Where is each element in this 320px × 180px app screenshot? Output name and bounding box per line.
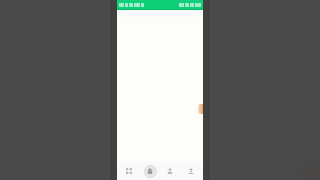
button[interactable]: Profile bbox=[161, 162, 179, 180]
button[interactable]: Upload bbox=[182, 162, 200, 180]
button[interactable]: Scroll handle bbox=[198, 104, 203, 114]
button[interactable]: Dashboard bbox=[120, 162, 138, 180]
button[interactable]: Home bbox=[141, 162, 159, 180]
